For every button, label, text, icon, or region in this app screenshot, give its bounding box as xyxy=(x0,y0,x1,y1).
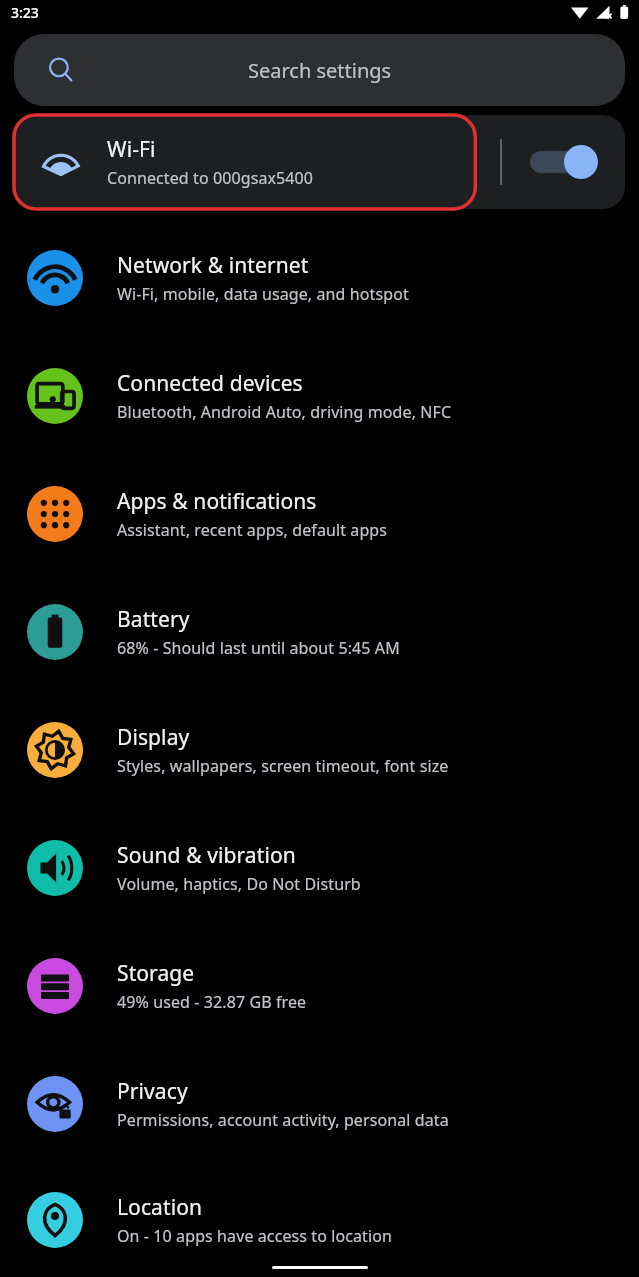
staticText: Network & internet xyxy=(117,251,309,280)
staticText: Connected to 000gsax5400 xyxy=(107,167,314,189)
staticText: Search settings xyxy=(248,57,392,84)
staticText: Apps & notifications xyxy=(117,487,317,516)
staticText: Styles, wallpapers, screen timeout, font… xyxy=(117,755,449,777)
button[interactable]: Apps & notifications xyxy=(0,455,639,573)
staticText: 68% - Should last until about 5:45 AM xyxy=(117,637,400,659)
button[interactable]: Connected devices xyxy=(0,337,639,455)
staticText: Sound & vibration xyxy=(117,841,296,870)
button[interactable]: Privacy xyxy=(0,1045,639,1163)
staticText: Permissions, account activity, personal … xyxy=(117,1109,449,1131)
staticText: Storage xyxy=(117,959,195,988)
button[interactable]: Display xyxy=(0,691,639,809)
staticText: Connected devices xyxy=(117,369,303,398)
button[interactable]: Storage xyxy=(0,927,639,1045)
button[interactable]: Battery xyxy=(0,573,639,691)
staticText: 3:23 xyxy=(11,3,39,22)
button[interactable]: Wi-Fi xyxy=(14,115,500,209)
staticText: Wi-Fi, mobile, data usage, and hotspot xyxy=(117,283,409,305)
staticText: 49% used - 32.87 GB free xyxy=(117,991,307,1013)
button[interactable]: Sound & vibration xyxy=(0,809,639,927)
staticText: Wi-Fi xyxy=(107,135,156,164)
staticText: On - 10 apps have access to location xyxy=(117,1225,392,1247)
other: Search xyxy=(48,57,74,83)
button[interactable]: Network & internet xyxy=(0,219,639,337)
button[interactable]: Location xyxy=(0,1163,639,1277)
staticText: Location xyxy=(117,1193,203,1222)
button[interactable]: Search xyxy=(14,34,625,106)
staticText: Bluetooth, Android Auto, driving mode, N… xyxy=(117,401,452,423)
staticText: Volume, haptics, Do Not Disturb xyxy=(117,873,361,895)
staticText: Battery xyxy=(117,605,190,634)
button[interactable]: Wi-Fi toggle xyxy=(502,115,625,209)
staticText: Assistant, recent apps, default apps xyxy=(117,519,388,541)
staticText: Privacy xyxy=(117,1077,188,1106)
staticText: Display xyxy=(117,723,190,752)
